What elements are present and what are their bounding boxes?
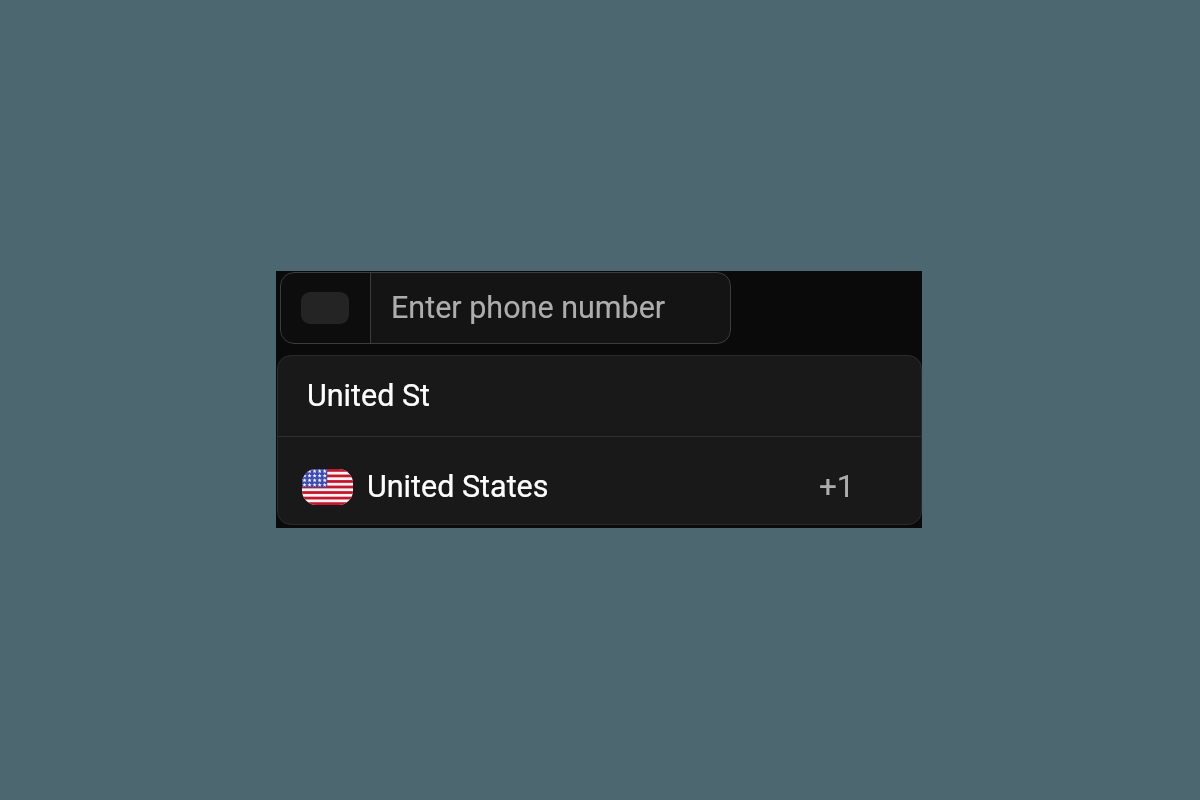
button[interactable]: United St bbox=[277, 355, 922, 436]
staticText: United States bbox=[367, 469, 549, 505]
button[interactable]: Select country bbox=[280, 272, 370, 344]
staticText: +1 bbox=[819, 468, 855, 505]
button[interactable]: Enter phone number bbox=[371, 272, 731, 344]
button[interactable]: United States bbox=[277, 437, 922, 525]
staticText: United St bbox=[307, 378, 431, 414]
staticText: Enter phone number bbox=[391, 290, 666, 326]
